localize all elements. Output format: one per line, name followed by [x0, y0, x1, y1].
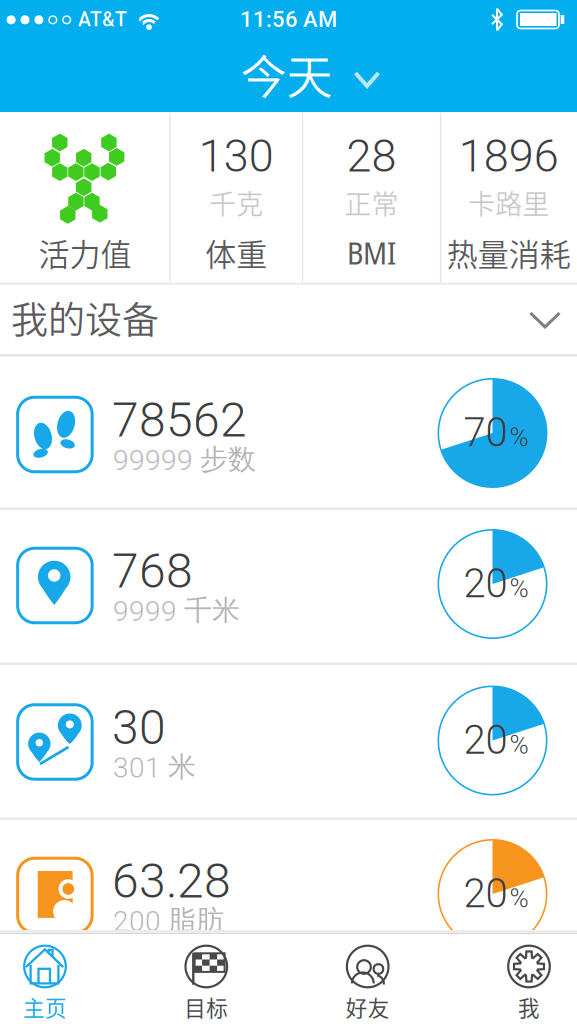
staticText: 热量消耗 [447, 230, 571, 275]
staticText: 9999 千米 [113, 593, 240, 628]
staticText: 99999 步数 [113, 442, 256, 477]
staticText: 20 [463, 560, 507, 607]
button[interactable]: 768 [0, 510, 577, 665]
staticText: 活力值 [38, 230, 131, 275]
button[interactable]: 好友 [336, 933, 400, 1023]
staticText: 今天 [240, 40, 332, 107]
staticText: 301 米 [113, 749, 196, 785]
staticText: 130 [199, 130, 274, 182]
staticText: 70 [463, 409, 507, 456]
staticText: 11:56 AM [240, 7, 337, 32]
staticText: 卡路里 [468, 183, 549, 222]
staticText: BMI [347, 231, 396, 274]
staticText: 体重 [205, 230, 267, 275]
staticText: 主页 [23, 991, 67, 1022]
staticText: 200 脂肪 [113, 903, 224, 938]
staticText: % [509, 573, 528, 604]
staticText: 28 [346, 130, 396, 182]
staticText: 63.28 [112, 853, 231, 909]
staticText: 20 [463, 717, 507, 763]
button[interactable]: 78562 [0, 355, 577, 510]
staticText: 目标 [184, 991, 228, 1022]
staticText: % [509, 422, 528, 453]
button[interactable]: 63.28 [0, 820, 577, 975]
staticText: 30 [112, 699, 166, 756]
button[interactable]: 目标 [174, 933, 238, 1023]
staticText: % [509, 883, 528, 914]
staticText: 1896 [459, 130, 559, 182]
button[interactable]: 今天 [188, 45, 388, 109]
staticText: 768 [112, 543, 193, 599]
staticText: AT&T [78, 8, 127, 31]
button[interactable]: 我 [497, 933, 561, 1023]
staticText: % [509, 730, 528, 760]
staticText: 我 [518, 991, 540, 1022]
staticText: 千克 [209, 183, 263, 222]
staticText: 78562 [112, 392, 247, 448]
staticText: 好友 [346, 991, 390, 1022]
button[interactable]: 30 [0, 665, 577, 820]
button[interactable]: 我的设备 [0, 284, 577, 354]
button[interactable]: 主页 [13, 933, 77, 1023]
staticText: 我的设备 [11, 291, 159, 344]
staticText: 正常 [344, 183, 398, 222]
staticText: 20 [463, 870, 507, 917]
